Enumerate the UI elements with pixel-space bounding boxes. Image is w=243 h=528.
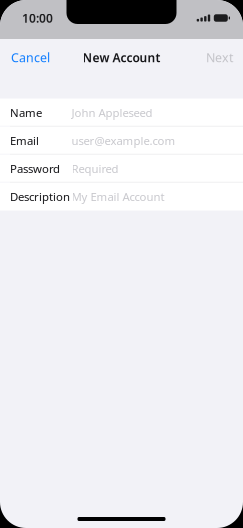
button[interactable]: Password: [0, 154, 243, 182]
staticText: Name: [10, 105, 42, 120]
button[interactable]: Description: [0, 182, 243, 210]
staticText: My Email Account: [71, 189, 164, 204]
staticText: John Appleseed: [71, 105, 152, 120]
staticText: Next: [206, 49, 233, 66]
staticText: Password: [10, 161, 60, 176]
staticText: New Account: [82, 49, 160, 66]
button[interactable]: Next: [196, 39, 243, 76]
staticText: Email: [10, 133, 39, 148]
button[interactable]: Cancel: [0, 39, 61, 76]
staticText: Cancel: [11, 49, 50, 66]
staticText: Required: [71, 161, 118, 176]
button[interactable]: Name: [0, 98, 243, 126]
staticText: Description: [10, 189, 70, 204]
staticText: 10:00: [22, 10, 53, 26]
button[interactable]: Email: [0, 126, 243, 154]
staticText: user@example.com: [71, 133, 175, 148]
